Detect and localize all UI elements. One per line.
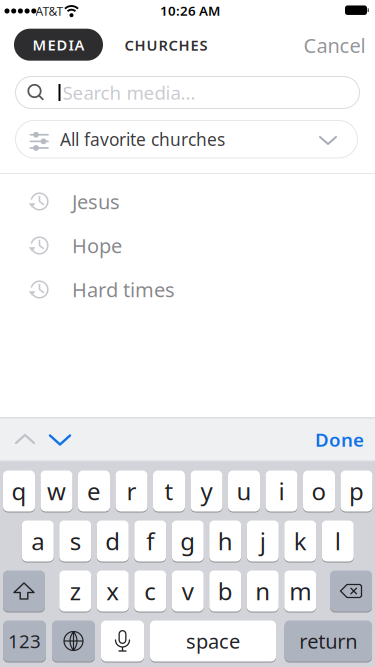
staticText: Hope xyxy=(72,232,122,259)
button[interactable]: q xyxy=(3,470,35,512)
button[interactable]: p xyxy=(340,470,372,512)
staticText: M E D I A xyxy=(32,35,84,54)
button[interactable]: Search media... xyxy=(15,76,360,109)
button[interactable]: n xyxy=(247,570,279,612)
staticText: r xyxy=(126,475,136,507)
staticText: h xyxy=(218,525,233,557)
button[interactable]: z xyxy=(59,570,91,612)
button[interactable]: v xyxy=(172,570,204,612)
button[interactable]: a xyxy=(22,520,54,562)
staticText: 123 xyxy=(8,629,41,653)
button[interactable]: t xyxy=(153,470,185,512)
staticText: i xyxy=(278,475,284,507)
staticText: e xyxy=(87,475,101,507)
button[interactable]: C H U R C H E S xyxy=(124,35,207,55)
button[interactable]: space xyxy=(150,620,276,662)
button[interactable]: b xyxy=(209,570,241,612)
button[interactable]: All favorite churches xyxy=(15,120,358,158)
button[interactable]: o xyxy=(303,470,335,512)
button[interactable]: Dictate xyxy=(101,620,144,662)
button[interactable]: Hard times xyxy=(0,267,375,311)
staticText: Jesus xyxy=(72,188,120,215)
staticText: n xyxy=(255,575,270,607)
button[interactable]: g xyxy=(172,520,204,562)
button[interactable]: w xyxy=(40,470,72,512)
staticText: o xyxy=(311,475,326,507)
button[interactable]: Next field xyxy=(42,427,78,452)
button[interactable]: e xyxy=(78,470,110,512)
staticText: AT&T xyxy=(35,3,63,19)
staticText: t xyxy=(164,475,173,507)
button[interactable]: r xyxy=(115,470,147,512)
staticText: a xyxy=(31,525,44,557)
button[interactable]: M E D I A xyxy=(14,29,103,61)
staticText: v xyxy=(182,575,194,607)
button[interactable]: Next keyboard xyxy=(52,620,95,662)
button[interactable]: d xyxy=(97,520,129,562)
staticText: k xyxy=(294,525,307,557)
button[interactable]: i xyxy=(265,470,297,512)
staticText: w xyxy=(47,475,66,507)
button[interactable]: l xyxy=(322,520,354,562)
staticText: g xyxy=(180,525,195,557)
button[interactable]: k xyxy=(284,520,316,562)
staticText: C H U R C H E S xyxy=(124,35,207,55)
staticText: return xyxy=(299,628,357,654)
button[interactable]: Numbers xyxy=(3,620,46,662)
staticText: Search media... xyxy=(62,80,195,105)
staticText: c xyxy=(144,575,156,607)
button[interactable]: Jesus xyxy=(0,179,375,223)
staticText: space xyxy=(186,628,240,654)
staticText: s xyxy=(70,525,81,557)
staticText: Cancel xyxy=(303,32,365,59)
button[interactable]: Hope xyxy=(0,223,375,267)
staticText: m xyxy=(289,575,311,607)
button[interactable]: h xyxy=(209,520,241,562)
button[interactable]: m xyxy=(284,570,316,612)
staticText: z xyxy=(70,575,81,607)
staticText: 10:26 AM xyxy=(160,2,220,19)
button[interactable]: Previous field xyxy=(8,427,42,451)
staticText: f xyxy=(146,525,154,557)
staticText: l xyxy=(335,525,341,557)
staticText: y xyxy=(200,475,212,507)
staticText: b xyxy=(218,575,233,607)
button[interactable]: u xyxy=(228,470,260,512)
button[interactable]: Delete xyxy=(330,570,372,612)
button[interactable]: c xyxy=(134,570,166,612)
button[interactable]: Done xyxy=(311,423,368,456)
staticText: Hard times xyxy=(72,276,175,303)
staticText: q xyxy=(11,475,26,507)
staticText: d xyxy=(105,525,120,557)
staticText: j xyxy=(260,525,266,557)
button[interactable]: Shift xyxy=(3,570,45,612)
button[interactable]: return xyxy=(284,620,372,662)
button[interactable]: s xyxy=(59,520,91,562)
button[interactable]: x xyxy=(97,570,129,612)
button[interactable]: j xyxy=(247,520,279,562)
staticText: p xyxy=(349,475,364,507)
button[interactable]: f xyxy=(134,520,166,562)
staticText: u xyxy=(236,475,251,507)
staticText: x xyxy=(106,575,119,607)
staticText: All favorite churches xyxy=(60,128,225,151)
button[interactable]: y xyxy=(190,470,222,512)
button[interactable]: Cancel xyxy=(303,32,365,59)
staticText: Done xyxy=(315,427,364,452)
